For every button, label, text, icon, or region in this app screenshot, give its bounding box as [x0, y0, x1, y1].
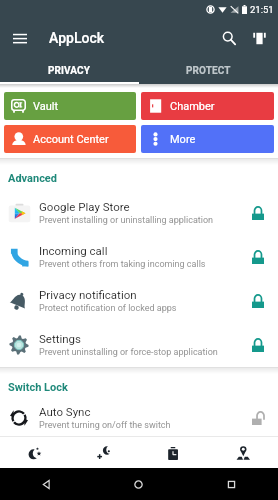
staticText: 21:51: [250, 4, 274, 15]
button[interactable]: Back: [0, 468, 92, 500]
staticText: Incoming call: [39, 244, 108, 257]
button[interactable]: Google Play Store: [0, 191, 278, 235]
button[interactable]: PRIVACY: [0, 58, 139, 82]
button[interactable]: Home: [92, 468, 185, 500]
staticText: Prevent others from taking incoming call…: [39, 259, 206, 270]
button[interactable]: Locked: [247, 334, 269, 356]
button[interactable]: More: [141, 125, 274, 153]
button[interactable]: Search: [214, 23, 244, 53]
staticText: Prevent installing or uninstalling appli…: [39, 215, 214, 226]
button[interactable]: Add night mode: [69, 437, 138, 468]
staticText: Account Center: [33, 133, 109, 146]
button[interactable]: Auto Sync: [0, 400, 278, 436]
button[interactable]: Unlocked: [247, 407, 269, 429]
button[interactable]: Recent apps: [185, 468, 278, 500]
button[interactable]: Locked: [247, 202, 269, 224]
button[interactable]: Vault: [4, 92, 136, 120]
button[interactable]: Locked: [247, 290, 269, 312]
button[interactable]: Privacy notification: [0, 279, 278, 323]
staticText: Protect notification of locked apps: [39, 303, 177, 314]
button[interactable]: Incoming call: [0, 235, 278, 279]
button[interactable]: Settings: [0, 323, 278, 367]
staticText: Google Play Store: [39, 200, 130, 213]
button[interactable]: Account Center: [4, 125, 136, 153]
staticText: Settings: [39, 332, 81, 345]
button[interactable]: Locked: [247, 246, 269, 268]
button[interactable]: Location: [208, 437, 278, 468]
staticText: Prevent uninstalling or force-stop appli…: [39, 347, 218, 358]
staticText: Chamber: [170, 100, 215, 113]
staticText: Switch Lock: [8, 381, 68, 394]
staticText: AppLock: [49, 30, 105, 46]
button[interactable]: Themes: [244, 23, 274, 53]
staticText: PRIVACY: [48, 65, 91, 77]
staticText: More: [170, 133, 196, 146]
button[interactable]: Night mode: [0, 437, 69, 468]
button[interactable]: PROTECT: [139, 58, 278, 82]
button[interactable]: Chamber: [141, 92, 274, 120]
button[interactable]: Schedule: [138, 437, 208, 468]
staticText: Vault: [33, 100, 59, 113]
staticText: PROTECT: [186, 65, 231, 77]
staticText: Prevent turning on/off the switch: [39, 420, 171, 431]
button[interactable]: Open navigation drawer: [6, 24, 34, 52]
staticText: Advanced: [8, 172, 57, 185]
staticText: Auto Sync: [39, 405, 91, 418]
staticText: Privacy notification: [39, 288, 137, 301]
